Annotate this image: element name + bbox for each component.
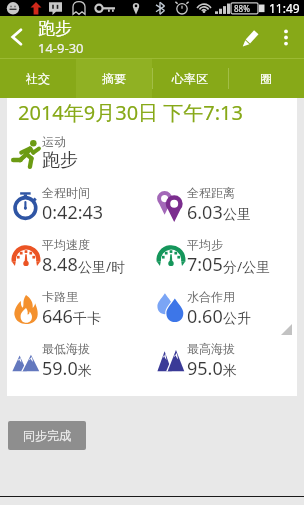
- button[interactable]: 同步完成: [8, 421, 86, 450]
- staticText: 8.48: [42, 252, 78, 277]
- button[interactable]: 圈: [228, 59, 304, 98]
- button[interactable]: Edit: [228, 16, 272, 58]
- staticText: 跑步: [38, 18, 72, 39]
- staticText: 公升: [223, 310, 251, 328]
- staticText: 平均速度: [42, 237, 90, 252]
- button[interactable]: 全程时间: [7, 179, 152, 231]
- button[interactable]: More options: [272, 16, 300, 58]
- button[interactable]: 平均速度: [7, 231, 152, 283]
- staticText: 公里: [223, 206, 251, 224]
- staticText: 卡路里: [42, 289, 78, 304]
- staticText: 11:49: [269, 0, 300, 16]
- staticText: 95.0: [187, 356, 223, 381]
- staticText: 摘要: [102, 71, 126, 86]
- staticText: 最低海拔: [42, 341, 90, 356]
- button[interactable]: 心率区: [152, 59, 228, 98]
- staticText: 6.03: [187, 200, 223, 225]
- staticText: 分/公里: [223, 257, 271, 276]
- button[interactable]: Back: [0, 16, 34, 58]
- staticText: 平均步: [187, 237, 223, 252]
- staticText: 0:42:43: [42, 200, 104, 225]
- staticText: 圈: [260, 71, 272, 86]
- button[interactable]: 平均步: [152, 231, 297, 283]
- staticText: 米: [223, 362, 237, 380]
- staticText: 59.0: [42, 356, 78, 381]
- button[interactable]: 全程距离: [152, 179, 297, 231]
- staticText: 最高海拔: [187, 341, 235, 356]
- staticText: 公里/时: [78, 257, 126, 276]
- staticText: 运动: [42, 134, 66, 149]
- staticText: 跑步: [42, 149, 78, 172]
- staticText: 14-9-30: [38, 39, 84, 57]
- staticText: 0.60: [187, 304, 223, 329]
- staticText: 米: [78, 362, 92, 380]
- staticText: 社交: [26, 71, 50, 86]
- button[interactable]: 最高海拔: [152, 335, 297, 387]
- staticText: 心率区: [172, 71, 208, 86]
- staticText: 千卡: [73, 310, 101, 328]
- button[interactable]: 摘要: [76, 59, 152, 98]
- staticText: 全程时间: [42, 185, 90, 200]
- button[interactable]: 社交: [0, 59, 76, 98]
- button[interactable]: 最低海拔: [7, 335, 152, 387]
- staticText: 水合作用: [187, 289, 235, 304]
- staticText: 2014年9月30日 下午7:13: [18, 99, 243, 126]
- button[interactable]: 水合作用: [152, 283, 297, 335]
- staticText: 646: [42, 304, 73, 329]
- staticText: 全程距离: [187, 185, 235, 200]
- staticText: 88%: [234, 3, 250, 14]
- staticText: 同步完成: [23, 428, 71, 443]
- button[interactable]: 卡路里: [7, 283, 152, 335]
- staticText: 7:05: [187, 252, 223, 277]
- button[interactable]: 运动: [7, 127, 152, 179]
